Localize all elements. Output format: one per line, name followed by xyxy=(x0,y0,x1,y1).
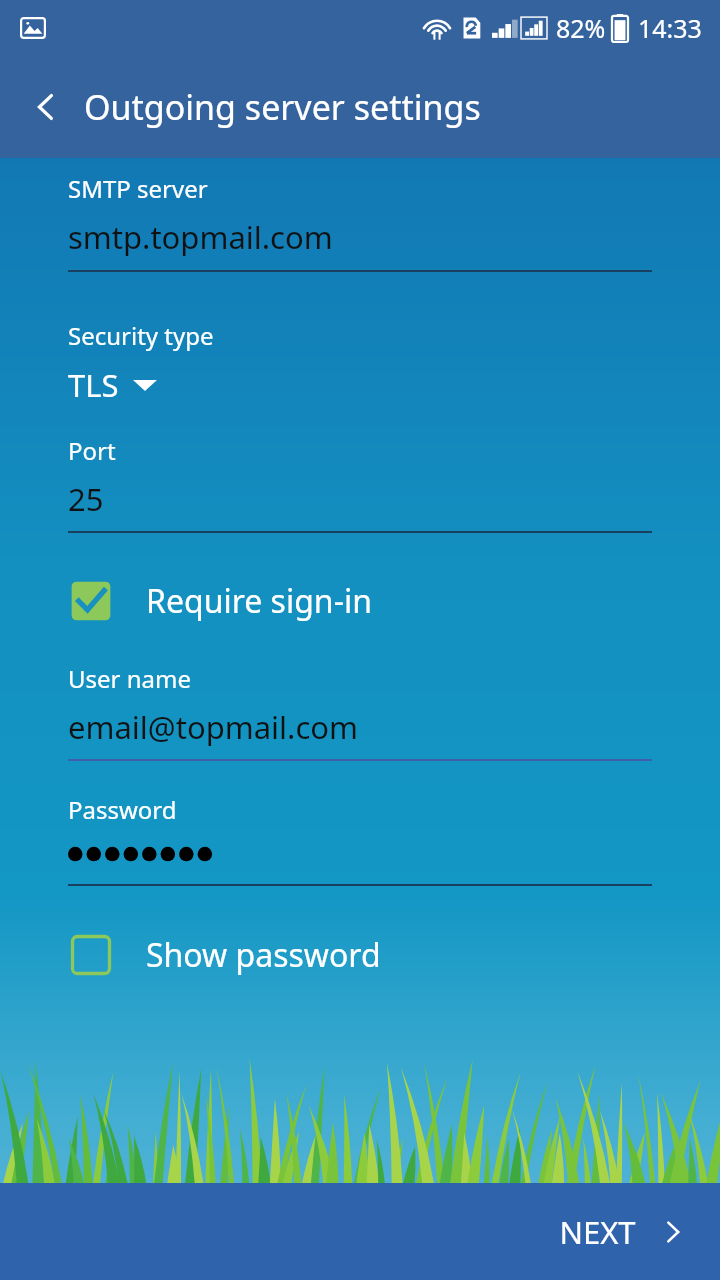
staticText: 82% xyxy=(556,11,606,45)
staticText: Show password xyxy=(146,933,381,977)
staticText: email@topmail.com xyxy=(68,706,359,748)
staticText: NEXT xyxy=(559,1211,636,1253)
staticText: 14:33 xyxy=(638,11,702,45)
staticText: Require sign-in xyxy=(146,579,372,623)
staticText: Password xyxy=(68,793,177,826)
staticText: Security type xyxy=(68,319,214,352)
staticText: 25 xyxy=(68,478,104,520)
staticText: SMTP server xyxy=(68,172,208,205)
staticText: User name xyxy=(68,662,191,695)
staticText: TLS xyxy=(68,364,119,406)
button[interactable]: Back xyxy=(18,79,74,135)
button[interactable]: Require sign-in xyxy=(68,578,652,624)
button[interactable]: Show password xyxy=(68,932,652,978)
staticText: smtp.topmail.com xyxy=(68,216,333,258)
button[interactable]: TLS xyxy=(68,364,157,406)
button[interactable]: NEXT xyxy=(525,1183,720,1280)
staticText: Port xyxy=(68,434,116,467)
staticText: Outgoing server settings xyxy=(84,84,481,130)
